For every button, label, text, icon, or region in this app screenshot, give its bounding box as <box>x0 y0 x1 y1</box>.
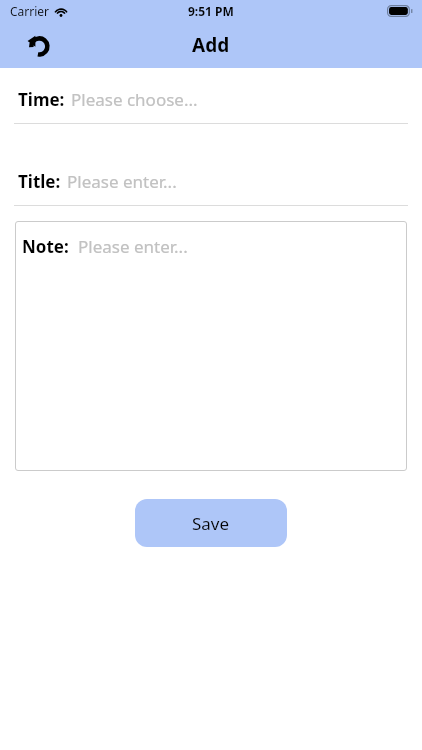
staticText: 9:51 PM <box>188 3 234 19</box>
button[interactable]: Title: <box>0 164 422 198</box>
staticText: Title: <box>18 170 61 193</box>
button[interactable]: Back <box>14 22 62 68</box>
button[interactable]: Save <box>135 499 287 547</box>
staticText: Please enter... <box>67 170 177 193</box>
staticText: Please choose... <box>71 88 198 111</box>
staticText: Add <box>192 32 230 58</box>
staticText: Carrier <box>10 3 50 19</box>
staticText: Please enter... <box>78 235 188 258</box>
button[interactable]: Time: <box>0 82 422 116</box>
staticText: Save <box>192 512 230 535</box>
button[interactable]: Note: <box>15 221 407 471</box>
staticText: Time: <box>18 88 65 111</box>
staticText: Note: <box>22 235 69 258</box>
